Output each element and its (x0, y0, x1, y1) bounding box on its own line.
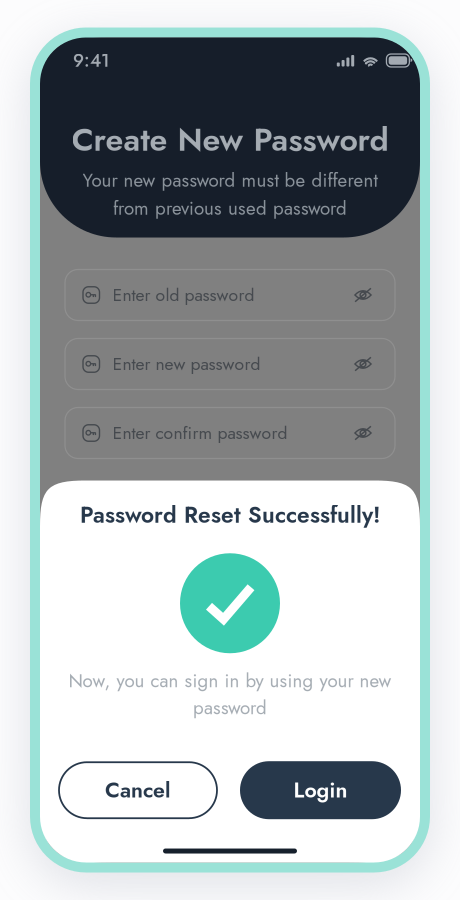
staticText: Login (293, 775, 347, 806)
button[interactable]: Enter confirm password (65, 407, 395, 458)
button[interactable]: Enter old password (65, 269, 395, 320)
staticText: Password Reset Successfully! (80, 498, 380, 531)
staticText: from previous used password (113, 195, 347, 222)
button[interactable]: Cancel (59, 762, 217, 818)
staticText: Now, you can sign in by using your new (68, 667, 391, 694)
staticText: Enter old password (112, 282, 254, 308)
staticText: Cancel (105, 775, 171, 806)
button[interactable]: Enter new password (65, 338, 395, 389)
staticText: Enter confirm password (112, 420, 287, 446)
button[interactable]: Login (240, 761, 401, 819)
staticText: Enter new password (112, 351, 260, 377)
staticText: Create New Password (71, 116, 388, 163)
staticText: 9:41 (73, 47, 110, 73)
staticText: Your new password must be different (82, 167, 377, 194)
staticText: password (193, 694, 267, 721)
